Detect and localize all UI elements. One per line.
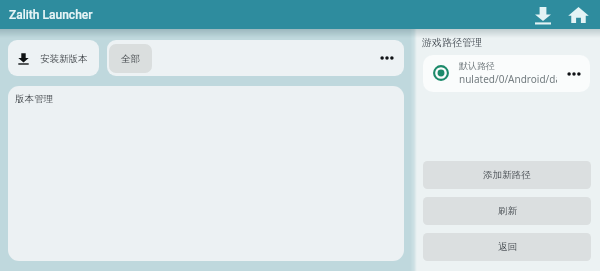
button[interactable]: 返回	[423, 233, 591, 261]
button[interactable]: 刷新	[423, 197, 591, 225]
button[interactable]: Path options	[565, 65, 583, 83]
staticText: 默认路径	[459, 60, 495, 71]
button[interactable]: 添加新路径	[423, 161, 591, 189]
staticText: 版本管理	[15, 93, 53, 105]
staticText: nulated/0/Android/data	[459, 72, 557, 86]
staticText: 返回	[498, 241, 517, 253]
staticText: Zalith Launcher	[9, 8, 93, 22]
staticText: 刷新	[498, 205, 517, 217]
button[interactable]: Download	[528, 0, 558, 29]
staticText: 游戏路径管理	[422, 36, 482, 49]
button[interactable]: 默认路径	[423, 55, 590, 92]
staticText: 添加新路径	[483, 169, 531, 181]
staticText: 全部	[121, 53, 140, 65]
button[interactable]: More options	[376, 47, 398, 69]
button[interactable]: Home	[563, 0, 593, 29]
button[interactable]: 全部	[109, 44, 152, 73]
button[interactable]: 安装新版本	[8, 40, 99, 76]
staticText: 安装新版本	[40, 53, 88, 65]
